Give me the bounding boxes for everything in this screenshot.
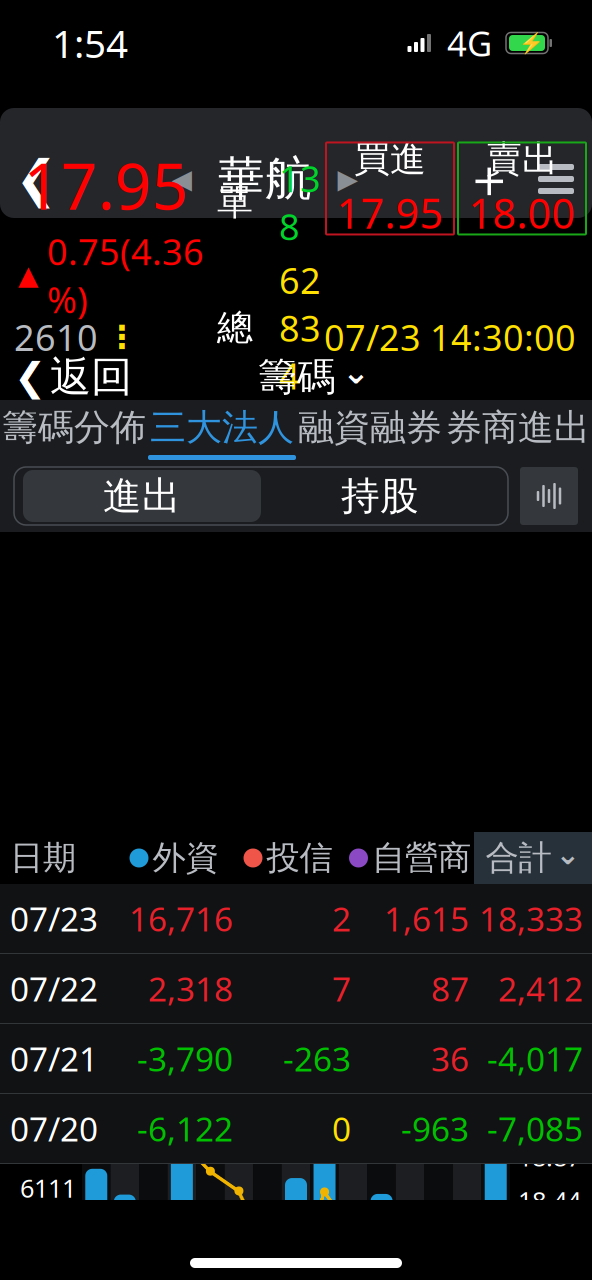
button[interactable]: 華航 [209, 140, 321, 218]
button[interactable]: Next stock [321, 140, 375, 218]
staticText: -4,017 [487, 1036, 583, 1081]
button[interactable]: 券商進出 [444, 400, 592, 460]
staticText: ▶ [337, 164, 358, 194]
staticText: 2,318 [148, 966, 233, 1011]
staticText: 6111 [20, 1171, 76, 1205]
button[interactable]: 賣出 [458, 142, 586, 234]
button[interactable]: Back [0, 140, 72, 218]
button[interactable]: ❮ [0, 354, 132, 400]
staticText: 持股 [341, 472, 419, 520]
staticText: 投信 [266, 837, 332, 878]
staticText: 合計 [485, 837, 551, 878]
staticText: ❮ [15, 150, 57, 208]
button[interactable]: 買進 [326, 142, 454, 234]
staticText: 17.95 [23, 142, 188, 227]
staticText: 0 [332, 1106, 351, 1151]
staticText: 07/22 [10, 966, 98, 1011]
staticText: 7 [332, 966, 351, 1011]
staticText: ◀ [171, 164, 192, 194]
staticText: ⋮ [106, 319, 138, 355]
button[interactable]: 合計 [474, 832, 592, 884]
staticText: 三大法人 [150, 405, 294, 450]
staticText: 1,615 [384, 896, 469, 941]
staticText: 融資融券 [298, 405, 442, 450]
staticText: 2 [332, 896, 351, 941]
staticText: 138 [279, 154, 321, 250]
staticText: ⌄ [555, 837, 580, 871]
staticText: 華航 [218, 150, 312, 208]
staticText: 券商進出 [446, 405, 590, 450]
staticText: 16,716 [129, 896, 233, 941]
staticText: 進出 [103, 472, 181, 520]
staticText: 4G [447, 20, 492, 66]
staticText: -263 [283, 1036, 351, 1081]
button[interactable]: 三大法人 [148, 400, 296, 460]
staticText: 籌碼 [258, 353, 336, 401]
staticText: 2,412 [498, 966, 583, 1011]
staticText: -3,790 [137, 1036, 233, 1081]
staticText: 自營商 [372, 837, 471, 878]
button[interactable]: Previous stock [155, 140, 209, 218]
staticText: ▲ [18, 260, 39, 290]
staticText: -7,085 [487, 1106, 583, 1151]
staticText: 19.30 [518, 1096, 581, 1130]
button[interactable]: Chart settings [520, 467, 578, 525]
staticText: 外資 [152, 837, 218, 878]
staticText: ＋ [462, 146, 515, 212]
staticText: 日期 [10, 837, 76, 878]
staticText: -963 [401, 1106, 469, 1151]
staticText: 1:54 [52, 17, 128, 69]
button[interactable]: 持股 [261, 470, 499, 522]
staticText: ❮ [14, 355, 46, 399]
staticText: 賣出 [486, 137, 558, 181]
button[interactable]: 融資融券 [296, 400, 444, 460]
button[interactable]: 進出 [23, 470, 261, 522]
staticText: 62834 [279, 256, 321, 399]
staticText: 2610 [14, 313, 98, 361]
staticText: 1.2萬 [16, 1132, 76, 1165]
staticText: 17.95 [336, 185, 443, 240]
staticText: 07/21 [10, 1036, 98, 1081]
staticText: 18,333 [479, 896, 583, 941]
staticText: ⚡ [519, 32, 544, 54]
button[interactable]: 籌碼 [258, 354, 370, 400]
staticText: 單 [217, 180, 253, 224]
staticText: 07/23 [10, 896, 98, 941]
staticText: ⌄ [342, 353, 370, 391]
staticText: 36 [431, 1036, 469, 1081]
staticText: -6,122 [137, 1106, 233, 1151]
staticText: 07/20 [10, 1106, 98, 1151]
staticText: 18.44 [518, 1184, 581, 1217]
staticText: 18.00 [468, 185, 575, 240]
button[interactable]: Add [458, 140, 520, 218]
staticText: 18.87 [518, 1140, 581, 1173]
staticText: 0.75(4.36%) [47, 227, 204, 323]
staticText: 返回 [50, 352, 132, 402]
staticText: 07/23 14:30:00 [324, 313, 576, 361]
staticText: 1.8萬 [16, 1092, 76, 1126]
staticText: 籌碼分佈 [2, 405, 146, 450]
staticText: 87 [431, 966, 469, 1011]
button[interactable]: 籌碼分佈 [0, 400, 148, 460]
staticText: 買進 [354, 137, 426, 181]
button[interactable]: Menu [520, 140, 592, 218]
staticText: 總 [217, 306, 253, 350]
